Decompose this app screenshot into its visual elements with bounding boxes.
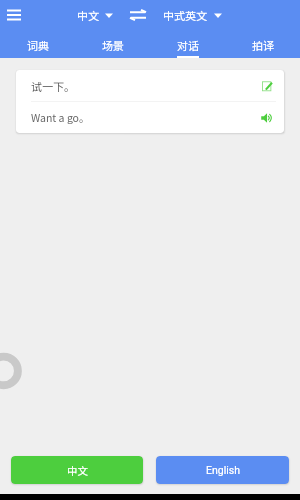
button[interactable]: 中式英文	[163, 7, 222, 23]
staticText: 试一下。	[31, 78, 75, 94]
button[interactable]: 中文	[11, 456, 143, 484]
staticText: 场景	[102, 37, 124, 53]
button[interactable]: Edit	[262, 80, 273, 91]
button[interactable]: Menu	[2, 2, 26, 26]
button[interactable]: English	[156, 456, 289, 484]
staticText: 拍译	[252, 37, 274, 53]
button[interactable]: 拍译	[225, 29, 300, 58]
button[interactable]: Play audio	[261, 113, 272, 123]
staticText: 词典	[27, 37, 49, 53]
button[interactable]: 试一下。	[16, 70, 284, 101]
staticText: 中式英文	[163, 7, 207, 23]
staticText: 对话	[177, 37, 199, 53]
button[interactable]: 对话	[150, 29, 225, 58]
staticText: 中文	[67, 463, 88, 478]
button[interactable]: 词典	[0, 29, 75, 58]
button[interactable]: Want a go。	[16, 102, 284, 133]
button[interactable]: 场景	[75, 29, 150, 58]
staticText: Want a go。	[31, 110, 90, 125]
staticText: English	[206, 464, 240, 476]
button[interactable]: Swap languages	[130, 7, 146, 23]
staticText: 中文	[77, 7, 99, 23]
button[interactable]: 中文	[77, 7, 113, 23]
